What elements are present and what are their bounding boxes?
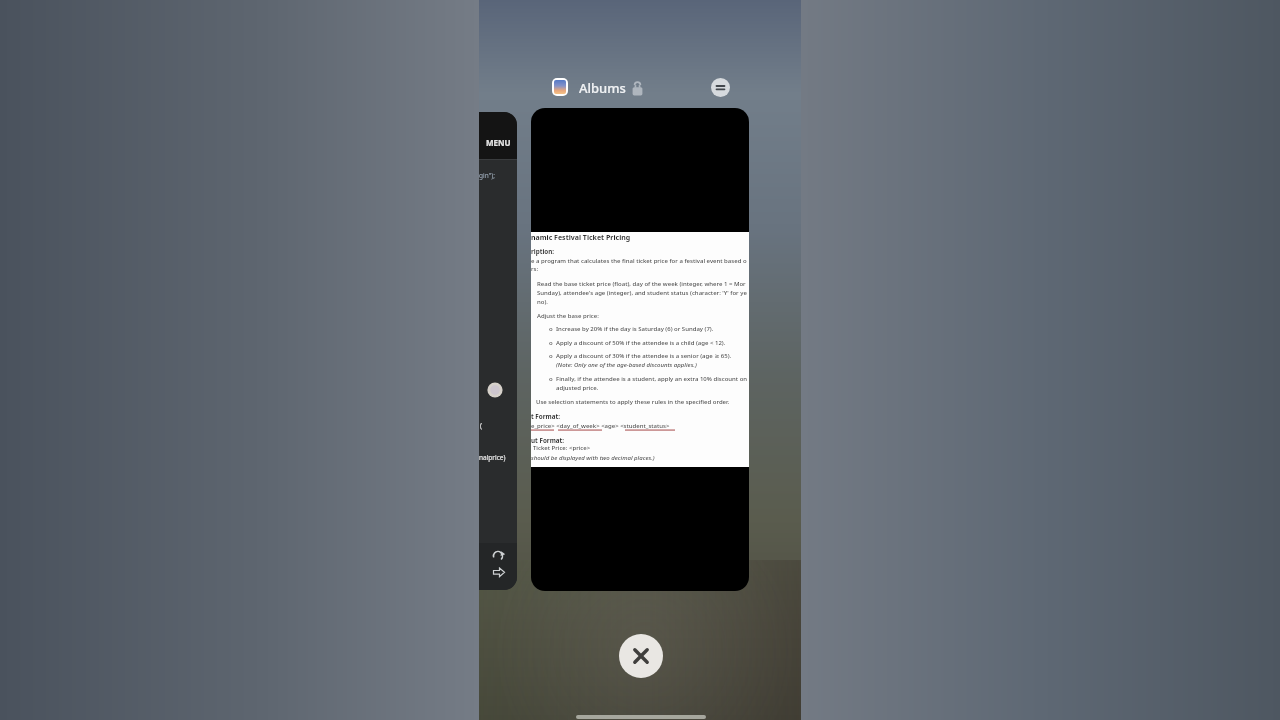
- staticText: (Note: Only one of the age-based discoun…: [556, 361, 697, 369]
- staticText: ription:: [531, 247, 555, 256]
- button[interactable]: [711, 78, 730, 97]
- staticText: Adjust the base price:: [537, 312, 599, 320]
- button[interactable]: [552, 78, 568, 96]
- staticText: o: [549, 339, 553, 347]
- staticText: o: [549, 375, 553, 383]
- staticText: Increase by 20% if the day is Saturday (…: [556, 325, 714, 333]
- staticText: Apply a discount of 50% if the attendee …: [556, 339, 726, 347]
- staticText: gin");: [479, 171, 495, 180]
- staticText: Ticket Price: <price>: [533, 444, 591, 452]
- staticText: Albums: [579, 79, 626, 97]
- staticText: t Format:: [531, 412, 560, 421]
- staticText: e_price> <day_of_week> <age> <student_st…: [531, 422, 670, 430]
- staticText: nalprice): [479, 453, 506, 462]
- staticText: adjusted price.: [556, 384, 599, 392]
- staticText: no).: [537, 298, 548, 306]
- staticText: rs:: [531, 265, 539, 273]
- staticText: should be displayed with two decimal pla…: [531, 454, 655, 462]
- button[interactable]: Albums: [579, 79, 641, 97]
- staticText: Sunday), attendee's age (integer), and s…: [537, 289, 747, 297]
- button[interactable]: [619, 634, 663, 678]
- staticText: namic Festival Ticket Pricing: [531, 233, 631, 243]
- staticText: e a program that calculates the final ti…: [531, 257, 747, 265]
- staticText: Apply a discount of 30% if the attendee …: [556, 352, 732, 360]
- staticText: o: [549, 325, 553, 333]
- button[interactable]: namic Festival Ticket Pricing: [531, 108, 749, 591]
- staticText: Read the base ticket price (float), day …: [537, 280, 746, 288]
- staticText: (: [480, 421, 482, 430]
- button[interactable]: MENU: [479, 112, 517, 590]
- staticText: o: [549, 352, 553, 360]
- staticText: Use selection statements to apply these …: [536, 398, 730, 406]
- staticText: Finally, if the attendee is a student, a…: [556, 375, 748, 383]
- staticText: ut Format:: [531, 436, 565, 445]
- staticText: MENU: [486, 137, 511, 148]
